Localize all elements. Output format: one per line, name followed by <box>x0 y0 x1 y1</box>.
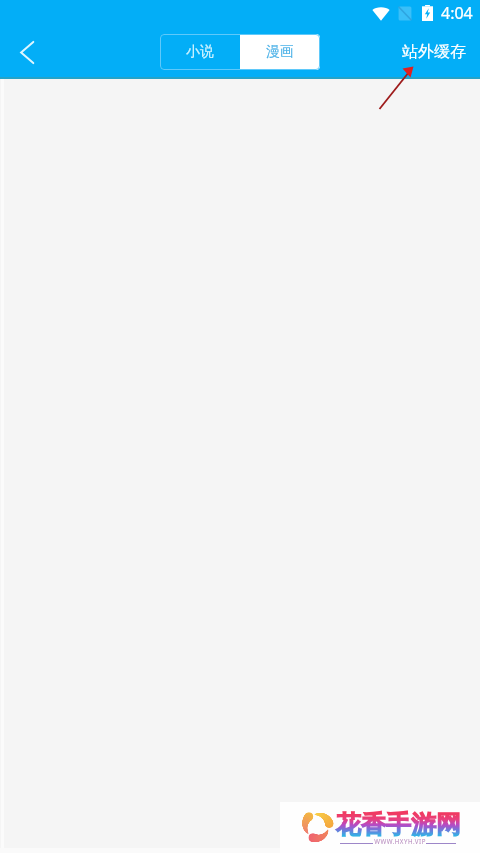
button[interactable]: 漫画 <box>240 34 320 70</box>
button[interactable]: 站外缓存 <box>388 26 480 78</box>
staticText: 4:04 <box>441 2 473 24</box>
staticText: 站外缓存 <box>402 42 466 62</box>
button[interactable]: 小说 <box>160 34 240 70</box>
staticText: 小说 <box>186 43 214 61</box>
staticText: 花香手游网 <box>336 809 461 840</box>
staticText: 漫画 <box>266 43 294 61</box>
staticText: WWW.HXYH.VIP <box>374 837 426 845</box>
button[interactable]: Back <box>1 26 53 78</box>
